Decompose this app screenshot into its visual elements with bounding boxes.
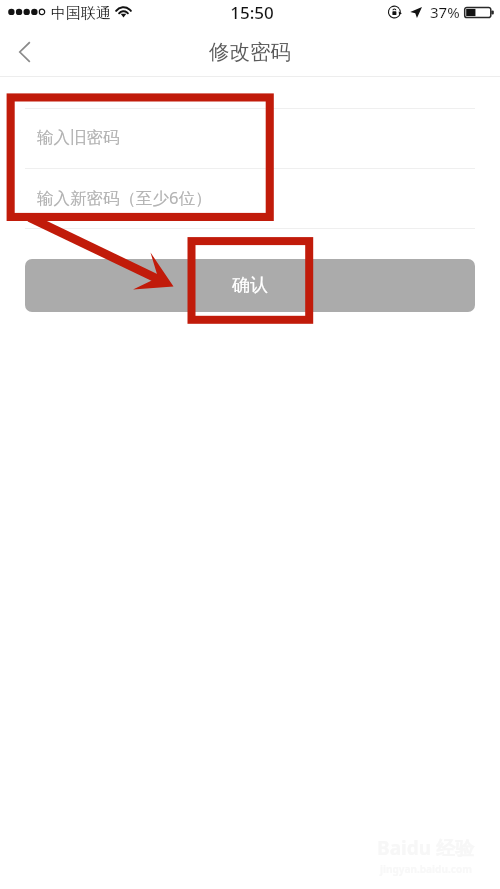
button[interactable]: 确认: [25, 259, 475, 312]
staticText: 修改密码: [209, 39, 291, 65]
button[interactable]: Back: [0, 26, 48, 77]
staticText: Baidu 经验: [377, 835, 474, 861]
staticText: 确认: [232, 274, 268, 297]
staticText: 15:50: [2, 1, 500, 24]
button[interactable]: 输入新密码（至少6位）: [0, 169, 500, 228]
staticText: 输入新密码（至少6位）: [37, 186, 212, 209]
staticText: 中国联通: [51, 4, 111, 23]
staticText: 37%: [430, 2, 460, 22]
staticText: 输入旧密码: [37, 127, 120, 148]
button[interactable]: 输入旧密码: [0, 109, 500, 168]
